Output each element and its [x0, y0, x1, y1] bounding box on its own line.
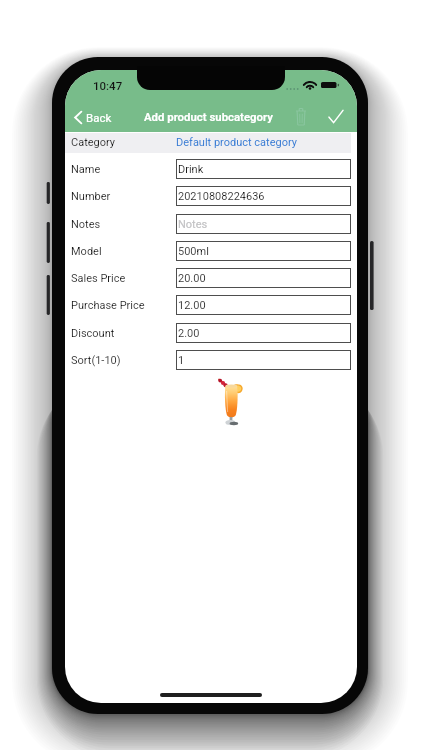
- button[interactable]: 500ml: [176, 241, 351, 261]
- staticText: Category: [71, 136, 116, 149]
- button[interactable]: 1: [176, 350, 351, 370]
- staticText: Notes: [178, 218, 208, 231]
- button[interactable]: Notes: [176, 214, 351, 234]
- staticText: Notes: [71, 218, 101, 231]
- button[interactable]: 20210808224636: [176, 186, 351, 206]
- button[interactable]: Save: [324, 105, 348, 128]
- staticText: Discount: [71, 327, 115, 340]
- staticText: Back: [86, 111, 112, 124]
- staticText: Sort(1-10): [71, 354, 121, 367]
- staticText: Add product subcategory: [144, 110, 273, 123]
- staticText: Purchase Price: [71, 299, 145, 312]
- button[interactable]: 12.00: [176, 295, 351, 315]
- staticText: Model: [71, 245, 102, 258]
- button[interactable]: 20.00: [176, 268, 351, 288]
- button[interactable]: Back: [70, 107, 117, 128]
- staticText: 12.00: [178, 299, 206, 312]
- staticText: Number: [71, 190, 111, 203]
- staticText: Default product category: [176, 136, 297, 149]
- staticText: Name: [71, 163, 101, 176]
- staticText: 20210808224636: [178, 190, 265, 203]
- staticText: 20.00: [178, 272, 206, 285]
- staticText: Sales Price: [71, 272, 126, 285]
- staticText: 1: [178, 354, 185, 367]
- staticText: 10:47: [93, 79, 123, 92]
- button[interactable]: 2.00: [176, 323, 351, 343]
- button[interactable]: [65, 133, 351, 153]
- staticText: Drink: [178, 163, 204, 176]
- staticText: 2.00: [178, 327, 200, 340]
- button[interactable]: Drink: [176, 159, 351, 179]
- button[interactable]: Delete: [291, 103, 311, 130]
- staticText: 500ml: [178, 245, 209, 258]
